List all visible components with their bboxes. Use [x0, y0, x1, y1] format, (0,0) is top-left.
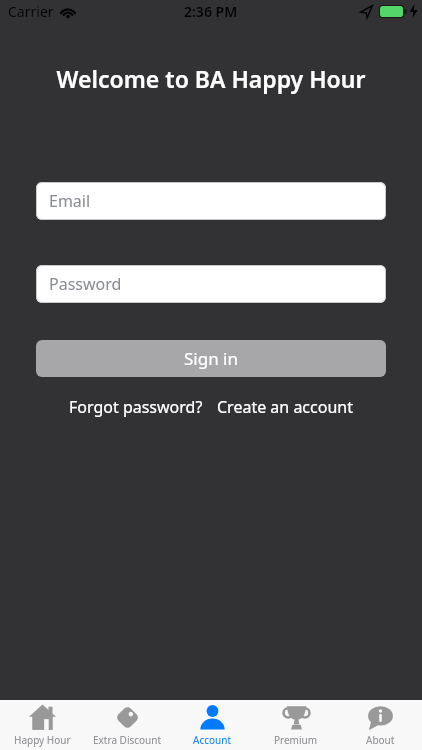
staticText: 2:36 PM — [184, 2, 238, 21]
button[interactable]: Happy Hour — [0, 700, 85, 750]
staticText: Email — [49, 190, 91, 212]
staticText: Extra Discount — [93, 733, 162, 747]
staticText: Carrier — [8, 2, 54, 21]
staticText: Premium — [274, 733, 318, 747]
staticText: Happy Hour — [14, 733, 71, 747]
staticText: About — [366, 733, 395, 747]
button[interactable]: Account — [170, 700, 254, 750]
staticText: Welcome to BA Happy Hour — [0, 63, 422, 94]
button[interactable]: Email — [36, 182, 386, 220]
button[interactable]: Create an account — [217, 396, 353, 418]
staticText: Password — [49, 273, 122, 295]
staticText: Sign in — [184, 347, 238, 370]
button[interactable]: Sign in — [36, 340, 386, 377]
button[interactable]: About — [338, 700, 422, 750]
button[interactable]: Password — [36, 265, 386, 303]
button[interactable]: Forgot password? — [69, 396, 203, 418]
button[interactable]: Premium — [254, 700, 338, 750]
button[interactable]: Extra Discount — [85, 700, 170, 750]
staticText: Account — [193, 733, 232, 747]
